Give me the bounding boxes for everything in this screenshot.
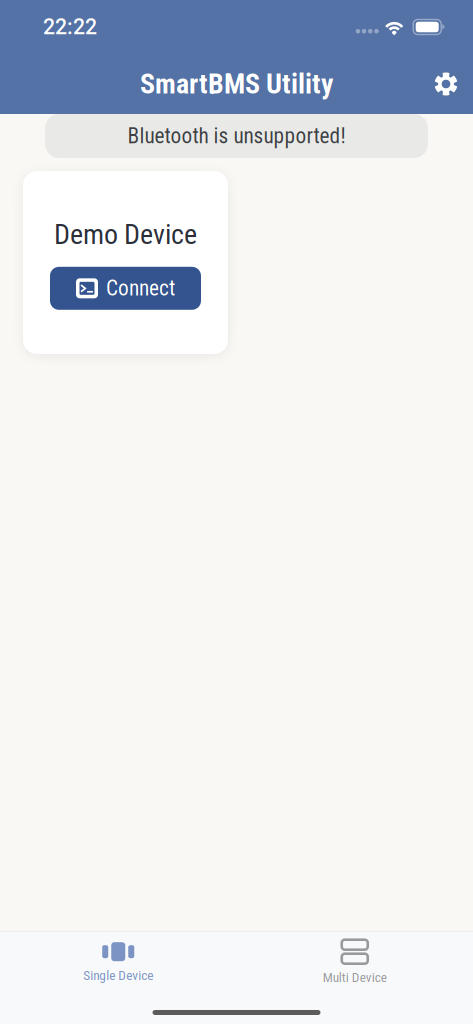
staticText: Multi Device [323, 970, 387, 985]
button[interactable]: Connect [50, 267, 201, 310]
staticText: Connect [106, 276, 175, 301]
staticText: SmartBMS Utility [140, 68, 333, 100]
staticText: Single Device [83, 968, 153, 983]
staticText: 22:22 [43, 14, 97, 39]
button[interactable]: Settings [423, 61, 469, 107]
button[interactable]: Single Device [0, 937, 236, 988]
button[interactable]: Multi Device [236, 937, 473, 988]
staticText: Bluetooth is unsupported! [127, 123, 345, 148]
staticText: Demo Device [54, 218, 197, 251]
